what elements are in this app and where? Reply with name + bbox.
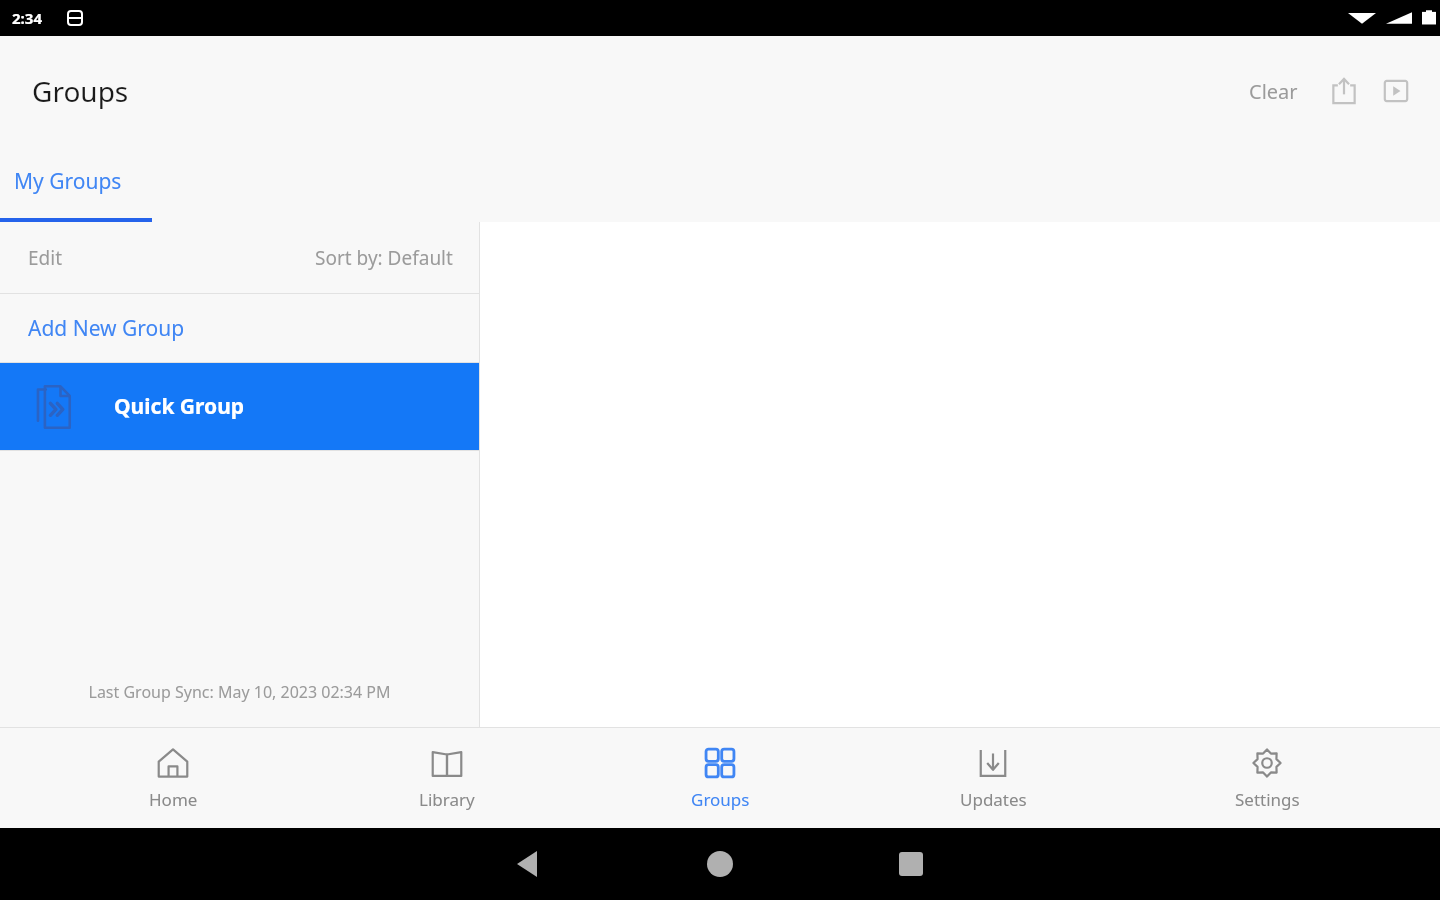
button[interactable]: Share [1322,69,1366,113]
button[interactable]: Add New Group [0,294,479,362]
staticText: Library [419,788,475,811]
button[interactable]: Settings [1167,728,1367,828]
staticText: Settings [1235,788,1300,811]
button[interactable]: Play [1374,69,1418,113]
staticText: Home [149,788,198,811]
staticText: Edit [28,245,63,271]
staticText: My Groups [14,167,122,196]
staticText: Quick Group [114,392,245,421]
button[interactable]: Clear [1241,70,1306,113]
staticText: Clear [1249,78,1298,105]
staticText: 2:34 [12,8,42,28]
button[interactable]: Edit [0,222,479,293]
staticText: Add New Group [28,314,185,343]
button[interactable]: Quick Group [0,363,479,450]
staticText: Groups [691,788,750,811]
button[interactable]: My Groups [0,146,152,222]
staticText: Sort by: Default [315,245,453,271]
staticText: Groups [32,72,129,110]
staticText: Updates [960,788,1027,811]
button[interactable]: Library [347,728,547,828]
button[interactable]: Home [73,728,273,828]
button[interactable]: Updates [893,728,1093,828]
staticText: Last Group Sync: May 10, 2023 02:34 PM [0,681,479,703]
button[interactable]: Groups [620,728,820,828]
